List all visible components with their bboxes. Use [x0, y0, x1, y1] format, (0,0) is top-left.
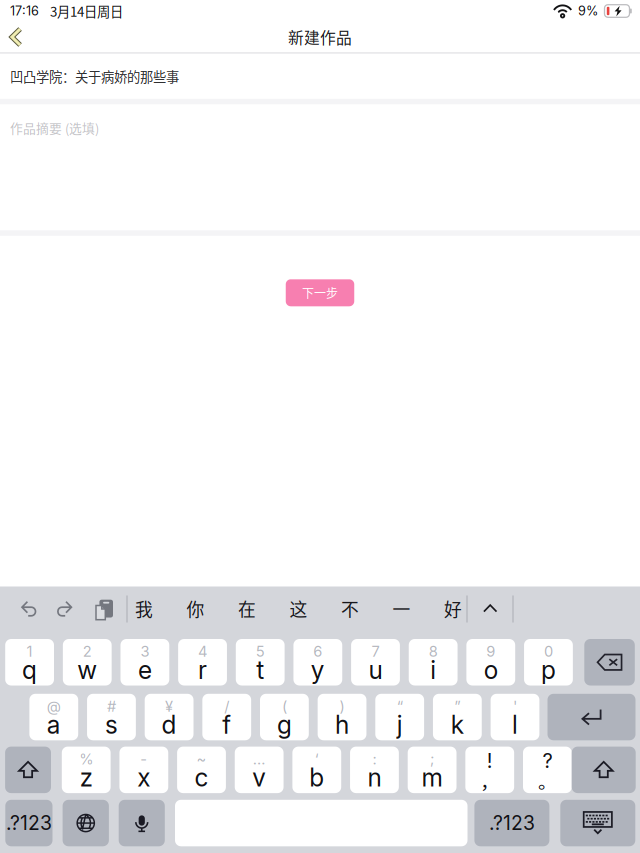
button[interactable]: ; — [408, 747, 456, 793]
button[interactable]: 在 — [224, 586, 269, 630]
button[interactable]: Next keyboard — [63, 800, 109, 846]
button[interactable]: 5 — [236, 639, 285, 685]
staticText: # — [107, 697, 116, 715]
button[interactable]: 我 — [121, 586, 166, 630]
staticText: h — [335, 710, 349, 740]
staticText: @ — [47, 697, 61, 715]
button[interactable]: ¥ — [145, 694, 193, 740]
button[interactable]: ~ — [177, 747, 226, 793]
staticText: 作品摘要 (选填) — [10, 118, 99, 137]
button[interactable]: - — [119, 747, 168, 793]
staticText: z — [80, 763, 93, 792]
button[interactable]: Numbers and symbols — [474, 800, 549, 846]
staticText: b — [309, 763, 324, 792]
staticText: 5 — [256, 643, 265, 660]
staticText: 3 — [140, 643, 149, 660]
button[interactable]: 凹凸学院：关于病娇的那些事 — [0, 54, 640, 99]
button[interactable]: Numbers and symbols — [5, 800, 52, 846]
staticText: 一 — [392, 596, 410, 621]
staticText: l — [512, 710, 518, 740]
button[interactable]: “ — [375, 694, 424, 740]
staticText: ‘ — [315, 750, 319, 768]
button[interactable]: 0 — [524, 639, 573, 685]
button[interactable]: @ — [29, 694, 78, 740]
button[interactable]: 9 — [466, 639, 515, 685]
staticText: 2 — [83, 643, 92, 660]
button[interactable]: % — [62, 747, 111, 793]
staticText: ” — [454, 697, 460, 715]
button[interactable]: More candidates — [467, 586, 512, 630]
staticText: 4 — [198, 643, 207, 660]
button[interactable]: 2 — [63, 639, 112, 685]
staticText: 下一步 — [302, 284, 338, 301]
button[interactable]: ‘ — [292, 747, 341, 793]
button[interactable]: Redo — [57, 600, 73, 616]
staticText: 新建作品 — [288, 26, 352, 48]
staticText: y — [311, 655, 325, 685]
staticText: 不 — [341, 596, 359, 621]
button[interactable]: 7 — [351, 639, 400, 685]
button[interactable]: ! — [465, 747, 514, 793]
staticText: “ — [397, 697, 403, 715]
staticText: : — [372, 750, 376, 768]
staticText: 6 — [313, 643, 322, 660]
staticText: d — [162, 710, 177, 740]
button[interactable]: # — [87, 694, 136, 740]
staticText: k — [451, 710, 464, 740]
staticText: 8 — [429, 643, 438, 660]
button[interactable]: 你 — [173, 586, 218, 630]
button[interactable]: Dictation — [119, 800, 165, 846]
button[interactable]: 4 — [178, 639, 227, 685]
staticText: ! — [487, 748, 493, 773]
button[interactable]: ” — [433, 694, 482, 740]
button[interactable]: ' — [491, 694, 539, 740]
button[interactable]: / — [202, 694, 251, 740]
button[interactable]: : — [350, 747, 399, 793]
staticText: 在 — [238, 596, 256, 621]
button[interactable]: Back — [0, 22, 42, 52]
staticText: ) — [339, 697, 344, 715]
staticText: a — [47, 710, 61, 740]
staticText: r — [198, 655, 207, 685]
button[interactable]: Undo — [21, 600, 37, 616]
staticText: 17:16 — [10, 3, 39, 19]
staticText: 1 — [27, 643, 33, 660]
staticText: 9% — [578, 3, 598, 19]
button[interactable]: 这 — [276, 586, 321, 630]
staticText: 我 — [135, 596, 153, 621]
staticText: m — [422, 763, 443, 792]
button[interactable]: Shift — [5, 747, 51, 793]
staticText: 3月14日周日 — [50, 1, 123, 21]
button[interactable]: ( — [260, 694, 309, 740]
button[interactable]: 3 — [120, 639, 169, 685]
staticText: 0 — [544, 643, 553, 660]
button[interactable]: Delete — [584, 639, 635, 685]
staticText: ' — [513, 697, 517, 715]
button[interactable]: … — [235, 747, 284, 793]
staticText: 。 — [538, 767, 557, 794]
button[interactable]: 6 — [293, 639, 342, 685]
staticText: p — [541, 655, 556, 685]
staticText: ( — [282, 697, 287, 715]
button[interactable]: ) — [318, 694, 366, 740]
staticText: 9 — [486, 643, 495, 660]
button[interactable]: 一 — [379, 586, 424, 630]
button[interactable]: Shift — [572, 747, 636, 793]
button[interactable]: Paste — [95, 599, 111, 620]
staticText: ， — [480, 767, 499, 794]
staticText: .?123 — [489, 811, 535, 835]
button[interactable]: ? — [523, 747, 572, 793]
button[interactable]: 1 — [5, 639, 54, 685]
button[interactable]: 下一步 — [286, 279, 354, 306]
button[interactable]: Hide keyboard — [560, 800, 635, 846]
button[interactable]: 不 — [327, 586, 372, 630]
staticText: 这 — [289, 596, 307, 621]
button[interactable]: 8 — [409, 639, 458, 685]
staticText: 你 — [186, 596, 204, 621]
staticText: / — [224, 697, 229, 715]
button[interactable]: 好 — [430, 586, 475, 630]
button[interactable]: Return — [547, 694, 635, 740]
button[interactable]: 作品摘要 (选填) — [0, 104, 640, 230]
staticText: i — [430, 655, 436, 685]
